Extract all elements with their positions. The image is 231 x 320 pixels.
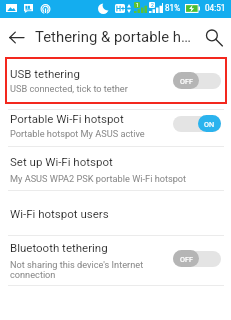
staticText: Bluetooth tethering xyxy=(10,241,108,254)
staticText: My ASUS WPA2 PSK portable Wi-Fi hotspot xyxy=(10,173,187,184)
staticText: 1 xyxy=(136,2,139,8)
button[interactable] xyxy=(0,110,231,147)
button[interactable]: Toggle off xyxy=(173,250,221,267)
staticText: Tethering & portable h… xyxy=(35,28,191,45)
staticText: H+ xyxy=(116,5,125,13)
staticText: Portable hotspot My ASUS active xyxy=(10,128,145,139)
staticText: Set up Wi-Fi hotspot xyxy=(10,155,113,168)
button[interactable] xyxy=(0,191,231,236)
staticText: 81% xyxy=(165,3,181,13)
staticText: 04:51 xyxy=(205,3,226,13)
staticText: connection xyxy=(10,269,56,280)
staticText: USB connected, tick to tether xyxy=(10,83,128,94)
staticText: ON xyxy=(204,120,215,128)
staticText: Wi-Fi hotspot users xyxy=(10,207,109,220)
button[interactable]: Toggle off xyxy=(173,72,221,89)
button[interactable]: Back xyxy=(4,25,29,50)
button[interactable] xyxy=(0,147,231,191)
button[interactable] xyxy=(0,57,231,110)
button[interactable]: Toggle on xyxy=(173,115,221,132)
staticText: OFF xyxy=(180,77,193,85)
staticText: 2 xyxy=(151,2,154,8)
staticText: Not sharing this device's Internet xyxy=(10,259,144,270)
staticText: OFF xyxy=(180,255,193,263)
staticText: USB tethering xyxy=(10,67,80,80)
button[interactable] xyxy=(0,236,231,286)
button[interactable]: Search xyxy=(201,25,226,50)
staticText: Portable Wi-Fi hotspot xyxy=(10,112,124,125)
